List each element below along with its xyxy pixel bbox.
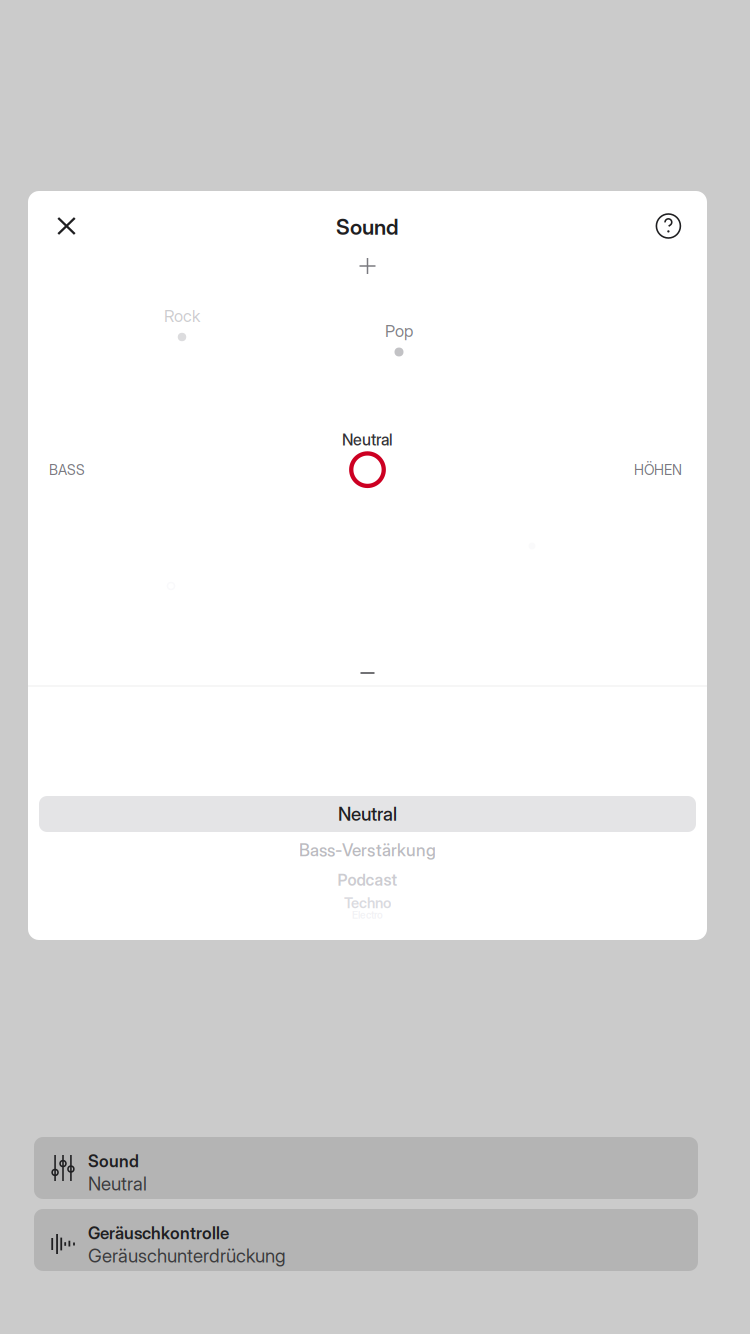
button[interactable]: Bass-Verstärkung <box>39 835 696 865</box>
button[interactable]: Neutral <box>322 428 412 488</box>
staticText: Pop <box>385 321 413 341</box>
staticText: Sound <box>88 1151 139 1171</box>
button[interactable]: Close <box>44 204 89 248</box>
staticText: Bass-Verstärkung <box>299 840 436 860</box>
button[interactable]: Help <box>645 203 691 249</box>
staticText: Rock <box>164 306 200 326</box>
staticText: Geräuschkontrolle <box>88 1223 229 1243</box>
staticText: Podcast <box>337 870 397 890</box>
staticText: BASS <box>49 461 85 478</box>
button[interactable]: Neutral <box>39 796 696 832</box>
staticText: Techno <box>344 894 391 912</box>
button[interactable]: Pop <box>385 322 413 364</box>
staticText: Sound <box>336 214 399 240</box>
staticText: Neutral <box>88 1172 147 1195</box>
button[interactable]: Techno <box>39 892 696 914</box>
button[interactable]: Geräuschkontrolle <box>34 1209 698 1271</box>
button[interactable]: Sound <box>34 1137 698 1199</box>
staticText: Geräuschunterdrückung <box>88 1244 286 1267</box>
staticText: Neutral <box>342 430 393 449</box>
staticText: Neutral <box>338 803 397 825</box>
button[interactable]: Rock <box>164 307 200 349</box>
button[interactable]: Podcast <box>39 867 696 893</box>
staticText: Electro <box>352 909 383 921</box>
staticText: HÖHEN <box>634 461 682 478</box>
